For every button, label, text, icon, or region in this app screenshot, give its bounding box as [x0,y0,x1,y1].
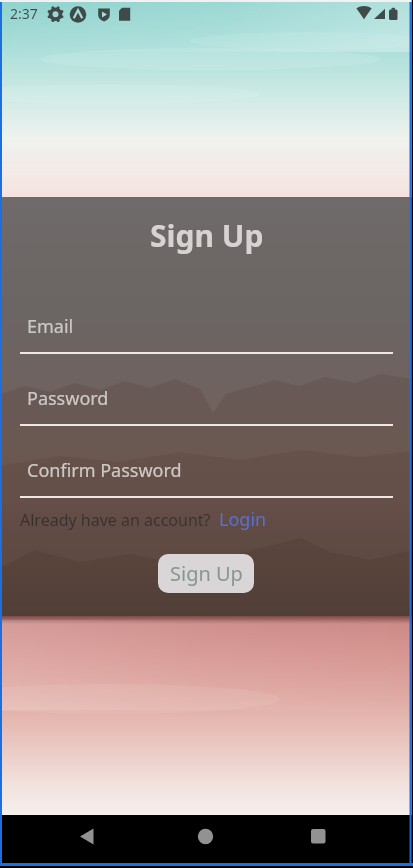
staticText: Already have an account? [20,509,211,531]
staticText: Login [219,507,267,532]
button[interactable] [189,822,223,852]
button[interactable]: Login [219,507,267,532]
button[interactable]: Email [20,305,393,354]
staticText: 2:37 [10,4,38,23]
staticText: Email [27,314,74,339]
staticText: Confirm Password [27,458,182,483]
staticText: Sign Up [170,560,243,587]
button[interactable] [301,822,335,852]
button[interactable] [70,822,104,852]
staticText: Sign Up [150,215,264,256]
button[interactable]: Sign Up [158,554,254,593]
button[interactable]: Confirm Password [20,449,393,498]
staticText: Password [27,386,109,411]
button[interactable]: Password [20,377,393,426]
